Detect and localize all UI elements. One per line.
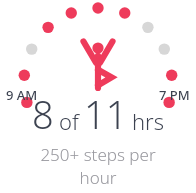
button[interactable]: 9 AM (6, 86, 38, 104)
button[interactable]: 8 (0, 88, 196, 189)
button[interactable]: Hourly move progress, 8 of 11 hours (0, 0, 196, 193)
staticText: 8 (32, 88, 54, 140)
staticText: 7 PM (159, 86, 190, 104)
staticText: 11 (84, 88, 128, 140)
button[interactable]: Hourly move progress, 8 of 11 hours (0, 0, 196, 100)
staticText: 250+ steps per hour (26, 143, 170, 189)
staticText: 9 AM (6, 86, 38, 104)
staticText: hrs (132, 106, 165, 136)
staticText: of (59, 106, 79, 136)
button[interactable]: 7 PM (159, 86, 190, 104)
